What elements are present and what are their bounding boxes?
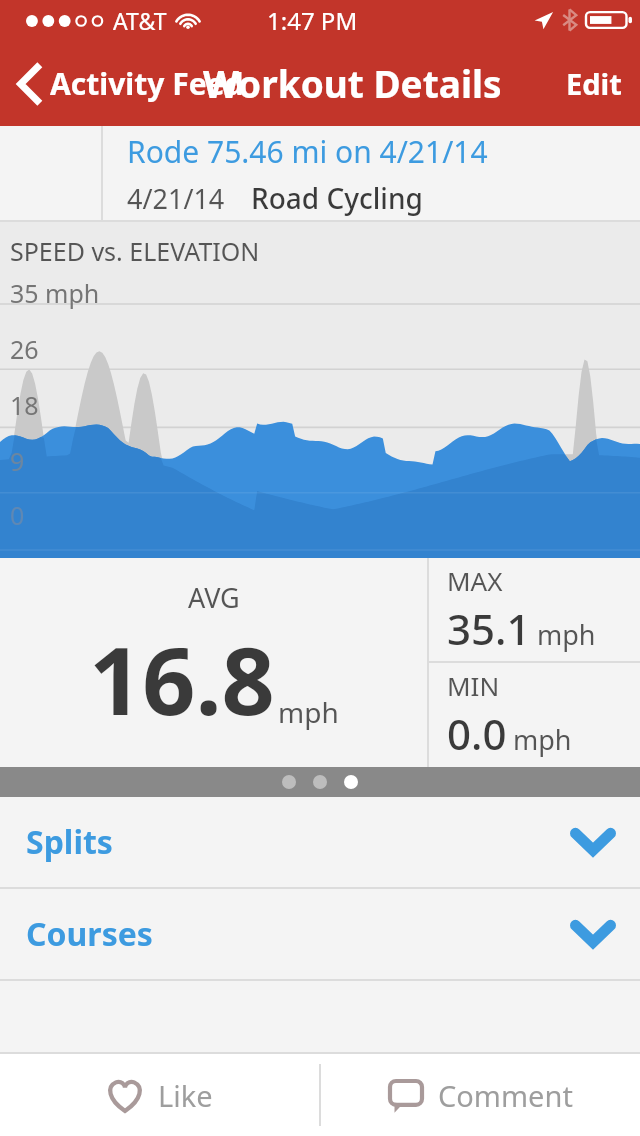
staticText: 18 [10,388,39,422]
staticText: Like [158,1076,213,1115]
staticText: Comment [438,1076,573,1115]
staticText: Edit [566,64,622,103]
button[interactable]: Comment [321,1054,640,1136]
staticText: mph [278,693,339,731]
other: Expand Courses [574,922,612,946]
staticText: Splits [26,820,113,864]
staticText: 16.8 [89,616,275,743]
staticText: AVG [188,579,240,616]
staticText: 1:47 PM [267,4,358,37]
button[interactable]: Splits [0,797,640,887]
staticText: 35.1 [447,600,531,657]
staticText: mph [537,616,596,653]
staticText: mph [513,721,572,758]
button[interactable]: Rode 75.46 mi on 4/21/14 [0,126,640,222]
button[interactable]: MIN [429,663,640,767]
other: Expand Splits [574,830,612,854]
button[interactable]: Courses [0,889,640,979]
staticText: Courses [26,912,153,956]
staticText: AT&T [113,5,167,36]
staticText: 35 mph [10,276,100,310]
button[interactable]: Activity Feed [0,63,252,104]
staticText: 0 [10,498,25,532]
button[interactable]: AVG [0,558,427,767]
staticText: Workout Details [203,58,502,108]
button[interactable]: Like [0,1054,319,1136]
button[interactable]: Edit [552,54,640,113]
staticText: Road Cycling [251,179,423,217]
staticText: SPEED vs. ELEVATION [10,234,260,268]
staticText: MIN [447,668,500,703]
staticText: 9 [10,444,25,478]
staticText: Rode 75.46 mi on 4/21/14 [127,131,488,172]
staticText: 4/21/14 [127,180,225,217]
staticText: 0.0 [447,705,507,762]
staticText: Activity Feed [50,63,244,104]
button[interactable]: MAX [429,558,640,661]
staticText: MAX [447,563,503,598]
staticText: 26 [10,332,39,366]
